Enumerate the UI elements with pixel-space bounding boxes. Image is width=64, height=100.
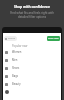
staticText: Search xyxy=(8,37,16,40)
button[interactable]: Shoes xyxy=(3,64,61,72)
staticText: Shop with confidence xyxy=(0,4,64,9)
button[interactable]: Shop now xyxy=(47,36,60,41)
button[interactable]: Search xyxy=(4,36,17,41)
button[interactable]: Beauty xyxy=(3,80,61,88)
staticText: Beauty xyxy=(12,82,21,86)
staticText: Men xyxy=(12,58,18,62)
staticText: Popular now xyxy=(12,44,61,48)
button[interactable]: Bags xyxy=(3,72,61,80)
button[interactable]: Profile xyxy=(3,88,61,96)
staticText: Shoes xyxy=(12,66,20,70)
button[interactable]: Women xyxy=(3,48,61,56)
staticText: Bags xyxy=(12,74,18,78)
staticText: Find what fits and feels right with deta… xyxy=(1,11,63,19)
staticText: Women xyxy=(12,50,22,54)
button[interactable]: Men xyxy=(3,56,61,64)
staticText: Shop now xyxy=(48,37,59,40)
